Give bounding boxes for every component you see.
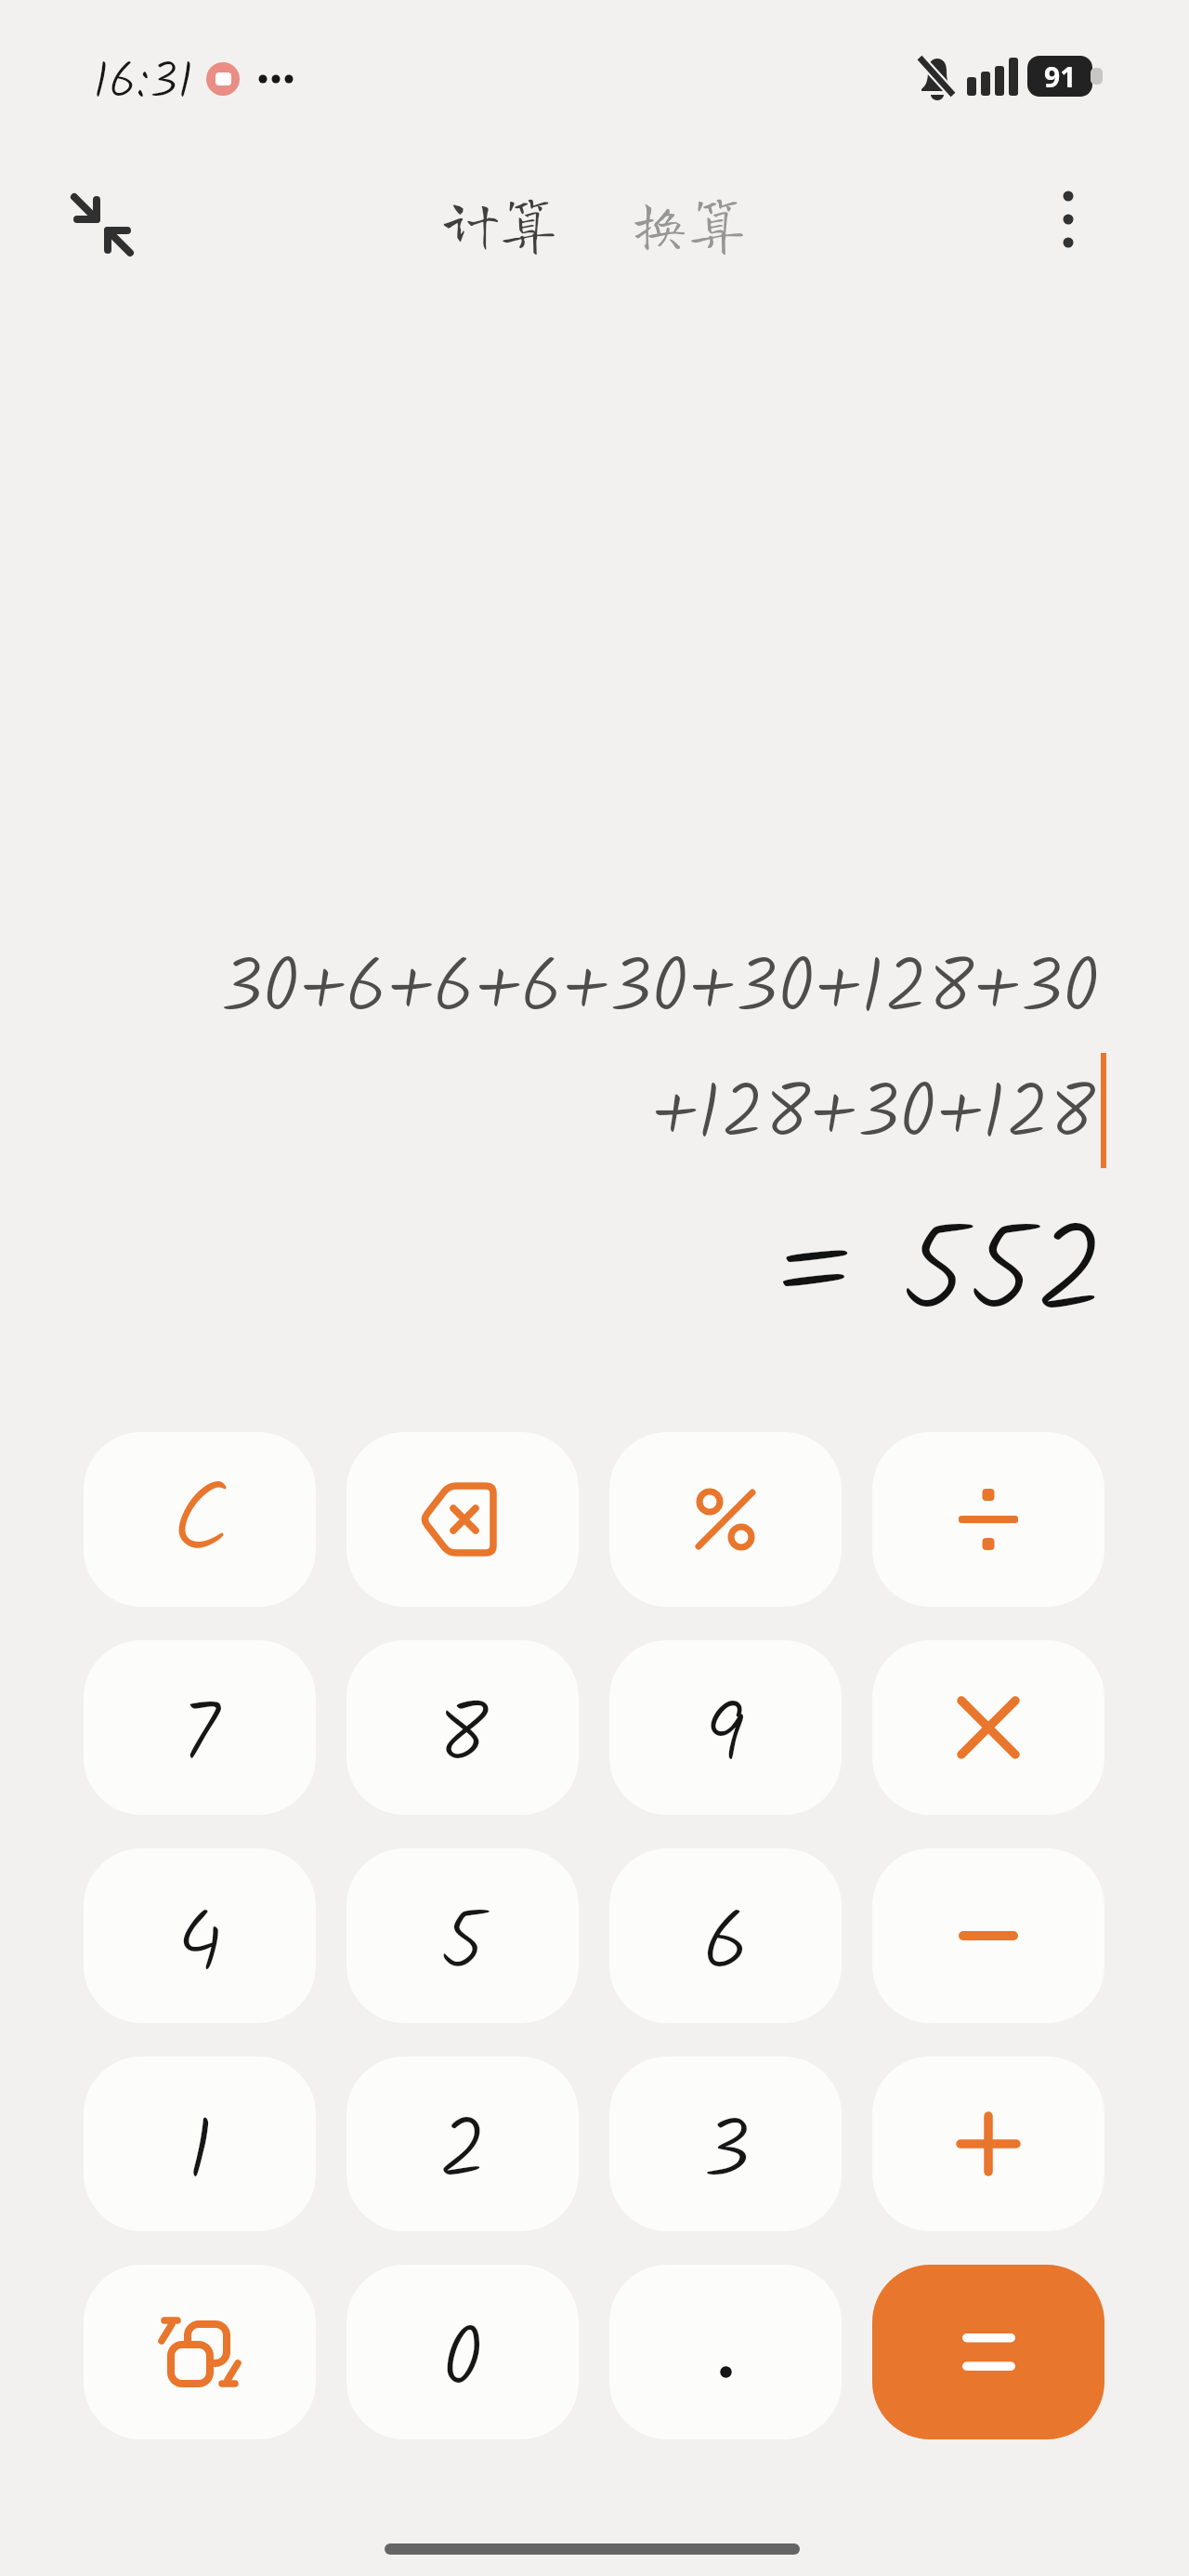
staticText: 91 bbox=[1044, 58, 1077, 96]
staticText: = 552 bbox=[776, 1181, 1105, 1375]
button[interactable] bbox=[609, 2265, 842, 2439]
staticText: 6 bbox=[702, 1879, 750, 2012]
button[interactable] bbox=[609, 1432, 842, 1607]
button[interactable]: 1 bbox=[84, 2057, 316, 2231]
button[interactable]: 计算 bbox=[442, 193, 558, 251]
button[interactable] bbox=[872, 2265, 1104, 2439]
button[interactable]: 8 bbox=[346, 1640, 579, 1815]
button[interactable] bbox=[872, 1640, 1104, 1815]
staticText: 8 bbox=[438, 1671, 489, 1804]
staticText: 9 bbox=[705, 1671, 746, 1804]
staticText: 30+6+6+6+30+30+128+30 bbox=[218, 931, 1100, 1051]
button[interactable]: 换算 bbox=[631, 193, 747, 251]
button[interactable] bbox=[84, 2265, 316, 2439]
staticText: 5 bbox=[439, 1879, 486, 2012]
button[interactable]: 6 bbox=[609, 1848, 842, 2023]
staticText: 0 bbox=[442, 2295, 484, 2428]
button[interactable]: 9 bbox=[609, 1640, 842, 1815]
staticText: +128+30+128 bbox=[651, 1057, 1095, 1176]
button[interactable]: 5 bbox=[346, 1848, 579, 2023]
staticText: C bbox=[171, 1445, 229, 1602]
staticText: 7 bbox=[181, 1671, 219, 1804]
staticText: 16:31 bbox=[93, 45, 193, 123]
button[interactable] bbox=[54, 177, 150, 273]
staticText: 2 bbox=[438, 2087, 488, 2220]
button[interactable] bbox=[872, 1432, 1104, 1607]
button[interactable]: 0 bbox=[346, 2265, 579, 2439]
staticText: 4 bbox=[176, 1879, 223, 2012]
button[interactable]: 4 bbox=[84, 1848, 316, 2023]
button[interactable] bbox=[872, 2057, 1104, 2231]
button[interactable]: 3 bbox=[609, 2057, 842, 2231]
button[interactable]: C bbox=[84, 1432, 316, 1607]
button[interactable]: 2 bbox=[346, 2057, 579, 2231]
button[interactable] bbox=[872, 1848, 1104, 2023]
button[interactable]: 7 bbox=[84, 1640, 316, 1815]
button[interactable] bbox=[346, 1432, 579, 1607]
staticText: 3 bbox=[701, 2087, 751, 2220]
staticText: 1 bbox=[187, 2087, 214, 2220]
button[interactable] bbox=[1022, 173, 1115, 266]
